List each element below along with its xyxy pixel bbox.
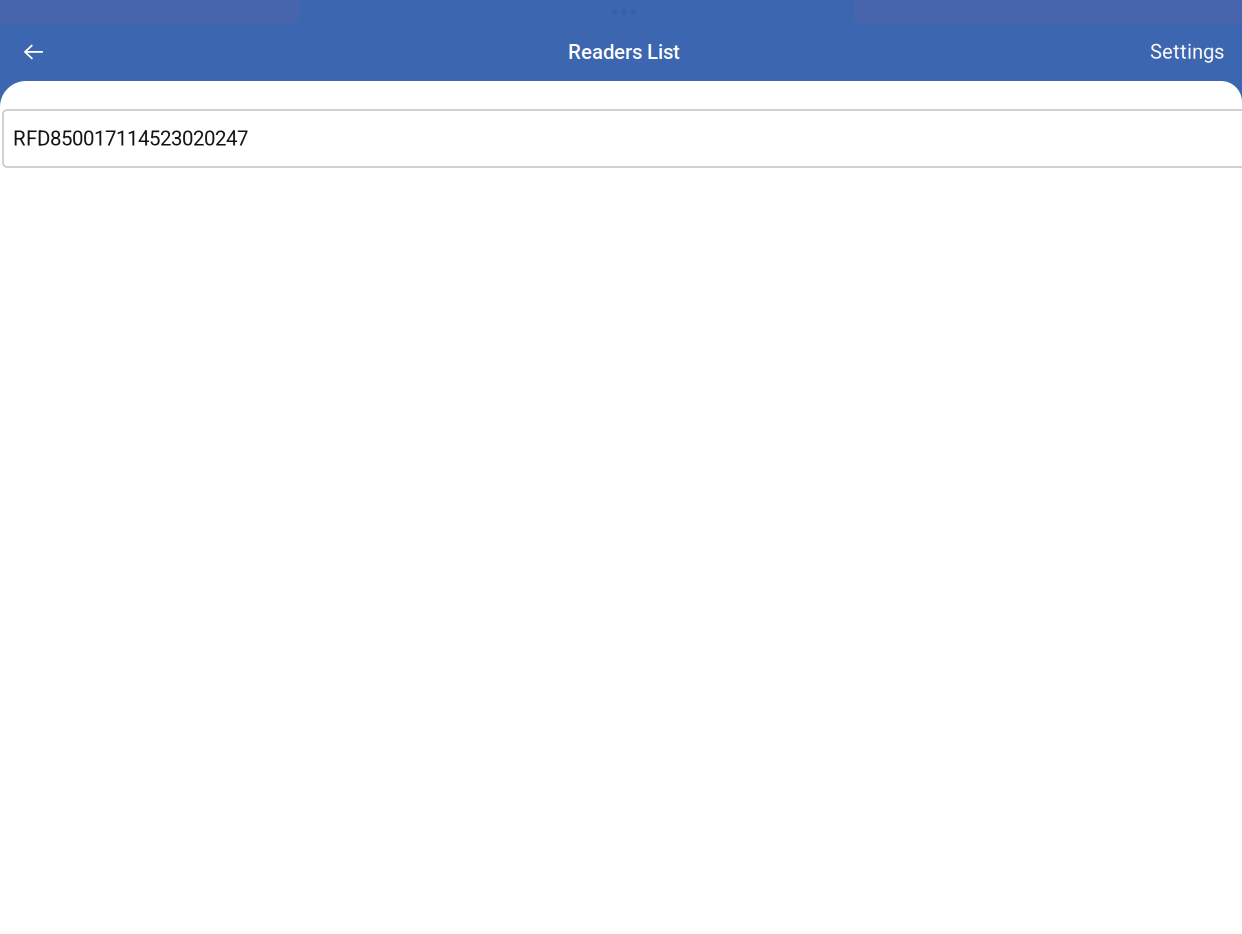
staticText: Settings <box>1150 40 1224 64</box>
staticText: RFD850017114523020247 <box>13 126 248 150</box>
button[interactable]: RFD850017114523020247 <box>3 110 1242 167</box>
staticText: Readers List <box>568 40 680 64</box>
button[interactable]: Back <box>0 23 68 81</box>
button[interactable]: Settings <box>1150 23 1242 81</box>
